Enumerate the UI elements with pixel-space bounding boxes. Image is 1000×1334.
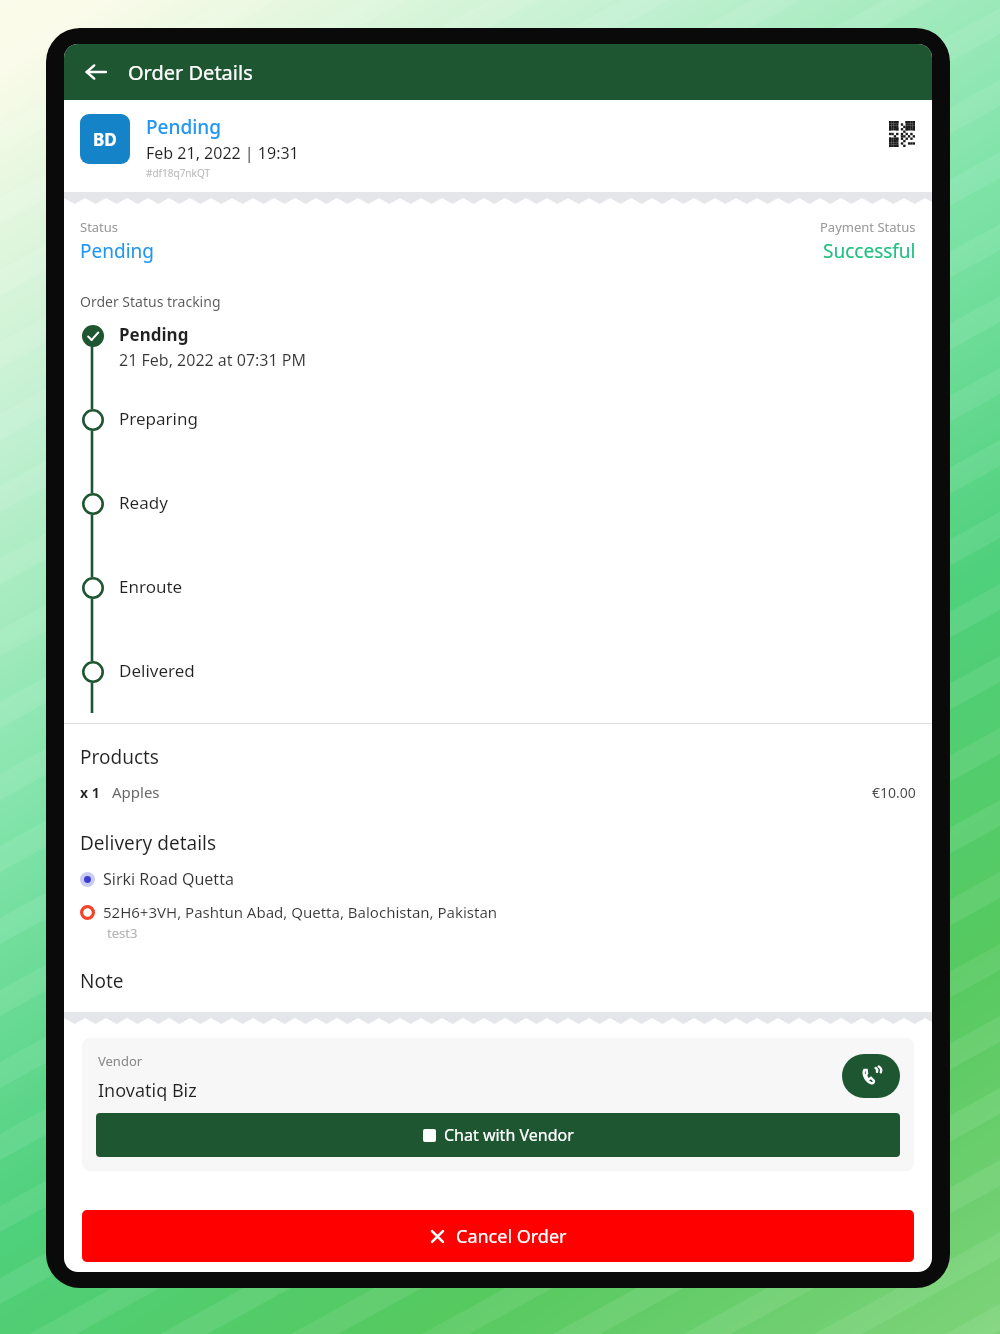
button[interactable]: Call vendor (842, 1054, 900, 1098)
staticText: #df18q7nkQT (146, 166, 210, 180)
button[interactable]: Sirki Road Quetta (80, 868, 234, 890)
button[interactable]: Pending (80, 323, 932, 407)
button[interactable]: Ready (80, 491, 932, 575)
staticText: Preparing (119, 407, 198, 430)
staticText: Vendor (98, 1052, 143, 1070)
staticText: Order Status tracking (80, 292, 221, 311)
staticText: Inovatiq Biz (98, 1078, 197, 1103)
button[interactable]: Delivered (80, 659, 932, 699)
staticText: BD (93, 128, 117, 151)
button[interactable]: Preparing (80, 407, 932, 491)
staticText: Products (80, 744, 159, 770)
button[interactable]: 52H6+3VH, Pashtun Abad, Quetta, Balochis… (80, 902, 498, 942)
button[interactable]: Chat with Vendor (96, 1113, 900, 1157)
staticText: Pending (119, 323, 189, 346)
staticText: €10.00 (872, 783, 916, 802)
staticText: Ready (119, 491, 168, 514)
staticText: Pending (80, 238, 154, 264)
staticText: 21 Feb, 2022 at 07:31 PM (119, 349, 307, 371)
button[interactable]: Cancel Order (82, 1210, 914, 1262)
staticText: Pending (146, 114, 222, 140)
staticText: Sirki Road Quetta (103, 868, 234, 890)
staticText: Successful (823, 238, 916, 264)
staticText: Status (80, 218, 119, 236)
staticText: Chat with Vendor (444, 1124, 574, 1146)
staticText: Payment Status (820, 218, 916, 236)
staticText: Feb 21, 2022 | 19:31 (146, 142, 299, 164)
button[interactable]: Back (76, 52, 116, 92)
staticText: 52H6+3VH, Pashtun Abad, Quetta, Balochis… (103, 902, 498, 922)
staticText: x 1 (80, 783, 100, 802)
button[interactable]: Enroute (80, 575, 932, 659)
staticText: Note (80, 968, 124, 994)
staticText: Delivery details (80, 830, 217, 856)
staticText: Delivered (119, 659, 195, 682)
staticText: Order Details (128, 59, 253, 86)
staticText: Apples (112, 782, 872, 802)
staticText: Cancel Order (456, 1224, 567, 1249)
staticText: test3 (107, 924, 138, 942)
button[interactable]: QR code (888, 120, 916, 148)
staticText: Enroute (119, 575, 183, 598)
